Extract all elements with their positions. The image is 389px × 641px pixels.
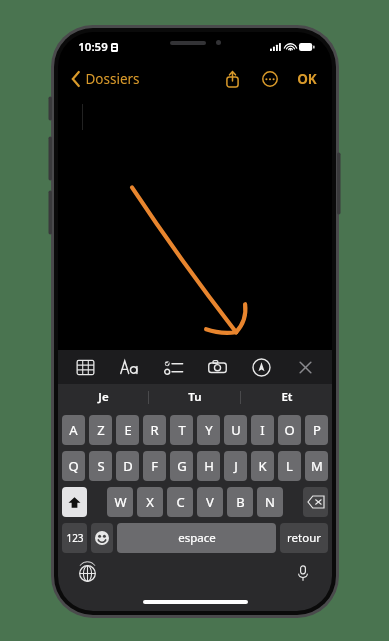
staticText: O [284, 421, 295, 439]
staticText: R [150, 421, 159, 439]
button[interactable]: X [137, 487, 163, 517]
button[interactable]: U [224, 415, 247, 445]
button[interactable]: OK [294, 67, 320, 91]
button[interactable]: D [116, 451, 139, 481]
button[interactable]: retour [280, 523, 328, 553]
staticText: C [176, 493, 185, 511]
staticText: espace [178, 530, 216, 546]
button[interactable]: espace [117, 523, 276, 553]
staticText: D [123, 457, 133, 475]
button[interactable]: H [197, 451, 220, 481]
button[interactable]: G [170, 451, 193, 481]
button[interactable]: Tableau [68, 350, 102, 384]
staticText: S [97, 457, 105, 475]
staticText: B [236, 493, 245, 511]
button[interactable]: 123 [62, 523, 87, 553]
staticText: N [265, 493, 275, 511]
button[interactable]: P [305, 415, 328, 445]
staticText: A [69, 421, 78, 439]
button[interactable]: Plus d'options [258, 67, 282, 91]
button[interactable]: I [251, 415, 274, 445]
button[interactable]: Fermer [288, 350, 322, 384]
button[interactable]: K [251, 451, 274, 481]
button[interactable]: T [170, 415, 193, 445]
button[interactable]: N [257, 487, 283, 517]
staticText: U [231, 421, 241, 439]
staticText: Z [97, 421, 105, 439]
staticText: Y [205, 421, 213, 439]
staticText: Tu [188, 389, 202, 405]
button[interactable]: M [305, 451, 328, 481]
button[interactable]: Dictée [288, 558, 318, 588]
staticText: V [206, 493, 214, 511]
staticText: F [151, 457, 158, 475]
button[interactable]: C [167, 487, 193, 517]
staticText: Et [281, 389, 293, 405]
staticText: L [286, 457, 293, 475]
button[interactable]: Annotation [244, 350, 278, 384]
staticText: H [204, 457, 214, 475]
staticText: X [146, 493, 154, 511]
button[interactable]: Emoji [91, 523, 113, 553]
staticText: 10:59 [78, 39, 108, 55]
button[interactable]: Dossiers [68, 66, 144, 92]
button[interactable]: Q [62, 451, 85, 481]
button[interactable]: Format du texte [112, 350, 146, 384]
button[interactable]: L [278, 451, 301, 481]
button[interactable]: J [224, 451, 247, 481]
staticText: T [178, 421, 186, 439]
button[interactable]: W [107, 487, 133, 517]
button[interactable]: O [278, 415, 301, 445]
button[interactable]: A [62, 415, 85, 445]
staticText: G [177, 457, 187, 475]
staticText: OK [297, 70, 317, 88]
button[interactable]: E [116, 415, 139, 445]
staticText: K [258, 457, 267, 475]
button[interactable]: Y [197, 415, 220, 445]
staticText: E [124, 421, 132, 439]
staticText: retour [287, 530, 321, 546]
staticText: M [311, 457, 323, 475]
staticText: Je [98, 389, 109, 405]
staticText: 123 [66, 531, 84, 545]
button[interactable]: Partager [221, 66, 244, 92]
button[interactable]: Je [58, 384, 148, 410]
button[interactable]: Appareil photo [200, 350, 234, 384]
staticText: I [260, 421, 265, 439]
button[interactable]: Supprimer [303, 487, 328, 517]
staticText: W [114, 493, 127, 511]
staticText: P [313, 421, 321, 439]
button[interactable]: Majuscule [62, 487, 87, 517]
button[interactable]: S [89, 451, 112, 481]
button[interactable]: B [227, 487, 253, 517]
staticText: J [234, 457, 238, 475]
staticText: Dossiers [85, 70, 140, 88]
button[interactable]: R [143, 415, 166, 445]
button[interactable]: Z [89, 415, 112, 445]
button[interactable]: Liste de contrôle [156, 350, 190, 384]
button[interactable]: V [197, 487, 223, 517]
button[interactable]: F [143, 451, 166, 481]
staticText: Q [68, 457, 79, 475]
button[interactable]: Changer de clavier [72, 558, 102, 588]
button[interactable]: Tu [149, 384, 240, 410]
button[interactable]: Et [241, 384, 332, 410]
